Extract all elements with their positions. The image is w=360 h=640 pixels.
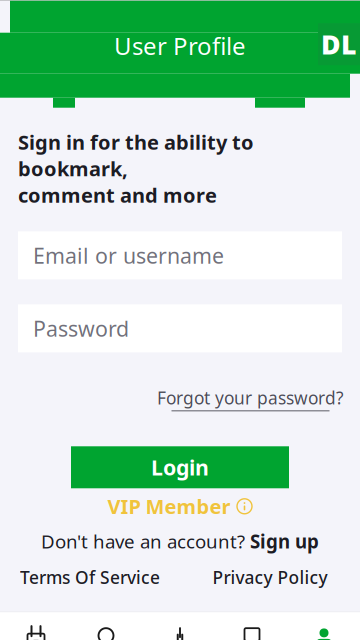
button[interactable]: Search — [72, 612, 144, 640]
staticText: Email or username — [33, 241, 224, 269]
staticText: VIP Member — [107, 493, 230, 520]
button[interactable]: Terms Of Service — [0, 560, 180, 594]
staticText: Don't have an account? — [41, 529, 245, 554]
staticText: Login — [151, 453, 209, 481]
button[interactable]: Home — [0, 612, 72, 640]
staticText: Privacy Policy — [212, 566, 327, 589]
button[interactable]: Login — [71, 446, 289, 488]
button[interactable]: Privacy Policy — [180, 560, 360, 594]
staticText: Forgot your password? — [157, 386, 344, 409]
button[interactable]: Downloads — [144, 612, 216, 640]
staticText: DL — [321, 26, 357, 62]
button[interactable]: DL — [318, 23, 360, 65]
button[interactable]: Bookmarks — [216, 612, 288, 640]
button[interactable]: Profile — [288, 612, 360, 640]
staticText: User Profile — [114, 30, 246, 62]
staticText: Terms Of Service — [20, 566, 160, 589]
staticText: Password — [33, 314, 129, 342]
button[interactable]: Don't have an account? — [41, 530, 319, 552]
staticText: Sign in for the ability to bookmark, com… — [18, 129, 254, 208]
button[interactable]: Forgot your password? — [157, 386, 344, 411]
button[interactable]: VIP Member — [107, 494, 252, 518]
staticText: Sign up — [250, 529, 319, 554]
